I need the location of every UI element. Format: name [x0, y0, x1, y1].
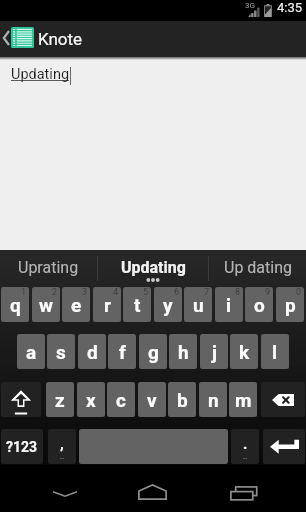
- button[interactable]: k: [230, 334, 258, 369]
- staticText: 4: [113, 287, 119, 298]
- staticText: c: [116, 389, 126, 411]
- staticText: z: [55, 389, 65, 411]
- button[interactable]: c: [107, 382, 135, 417]
- staticText: 3: [82, 287, 88, 298]
- button[interactable]: Recent apps: [215, 465, 275, 512]
- staticText: 3G: [245, 1, 255, 10]
- staticText: Updating: [121, 258, 186, 277]
- staticText: Updating: [11, 66, 70, 83]
- staticText: 4:35: [277, 0, 303, 15]
- staticText: r: [104, 294, 111, 316]
- button[interactable]: n: [199, 382, 227, 417]
- staticText: v: [147, 389, 157, 411]
- button[interactable]: a: [17, 334, 45, 369]
- staticText: 2: [52, 287, 58, 298]
- button[interactable]: o: [245, 287, 273, 322]
- staticText: •••: [243, 456, 248, 461]
- staticText: a: [26, 341, 37, 363]
- staticText: 8: [235, 287, 241, 298]
- button[interactable]: v: [138, 382, 166, 417]
- button[interactable]: j: [200, 334, 228, 369]
- button[interactable]: Home: [123, 465, 183, 512]
- staticText: f: [119, 341, 126, 363]
- button[interactable]: ?123: [1, 429, 43, 464]
- staticText: 5: [143, 287, 149, 298]
- staticText: e: [71, 294, 82, 316]
- button[interactable]: p: [276, 287, 304, 322]
- staticText: 7: [204, 287, 210, 298]
- staticText: q: [10, 294, 21, 316]
- staticText: o: [254, 294, 265, 316]
- button[interactable]: Hide keyboard: [35, 465, 95, 512]
- staticText: h: [178, 341, 189, 363]
- button[interactable]: Uprating: [0, 250, 97, 287]
- staticText: ,: [60, 435, 64, 453]
- button[interactable]: l: [261, 334, 289, 369]
- staticText: b: [177, 389, 188, 411]
- staticText: u: [193, 294, 204, 316]
- button[interactable]: e: [62, 287, 90, 322]
- button[interactable]: t: [123, 287, 151, 322]
- button[interactable]: .: [231, 429, 259, 464]
- button[interactable]: m: [229, 382, 257, 417]
- staticText: m: [235, 389, 252, 411]
- staticText: •••: [60, 456, 65, 461]
- button[interactable]: f: [108, 334, 136, 369]
- staticText: t: [134, 294, 141, 316]
- staticText: k: [239, 341, 250, 363]
- staticText: d: [87, 341, 98, 363]
- button[interactable]: q: [1, 287, 29, 322]
- button[interactable]: z: [46, 382, 74, 417]
- button[interactable]: x: [77, 382, 105, 417]
- staticText: Uprating: [18, 258, 79, 277]
- button[interactable]: b: [168, 382, 196, 417]
- staticText: p: [285, 294, 296, 316]
- button[interactable]: w: [32, 287, 60, 322]
- staticText: x: [86, 389, 96, 411]
- staticText: 0: [296, 287, 302, 298]
- button[interactable]: Enter: [263, 429, 305, 464]
- button[interactable]: u: [184, 287, 212, 322]
- button[interactable]: d: [78, 334, 106, 369]
- staticText: s: [56, 341, 66, 363]
- button[interactable]: ,: [48, 429, 76, 464]
- button[interactable]: g: [139, 334, 167, 369]
- button[interactable]: Navigate up: [0, 21, 11, 57]
- staticText: Knote: [38, 29, 83, 49]
- button[interactable]: r: [93, 287, 121, 322]
- button[interactable]: i: [215, 287, 243, 322]
- button[interactable]: Backspace: [261, 382, 305, 417]
- button[interactable]: Updating: [98, 250, 208, 287]
- button[interactable]: Shift: [1, 382, 41, 417]
- staticText: w: [39, 294, 53, 316]
- staticText: n: [208, 389, 219, 411]
- staticText: 1: [21, 287, 27, 298]
- staticText: i: [226, 294, 232, 316]
- button[interactable]: y: [154, 287, 182, 322]
- staticText: j: [212, 341, 217, 363]
- staticText: l: [272, 341, 278, 363]
- staticText: y: [163, 294, 173, 316]
- staticText: .: [243, 435, 248, 453]
- button[interactable]: h: [169, 334, 197, 369]
- staticText: ?123: [6, 439, 38, 455]
- staticText: 9: [265, 287, 271, 298]
- staticText: Up dating: [224, 258, 292, 277]
- staticText: g: [148, 341, 159, 363]
- button[interactable]: Up dating: [209, 250, 306, 287]
- staticText: 6: [174, 287, 180, 298]
- button[interactable]: s: [47, 334, 75, 369]
